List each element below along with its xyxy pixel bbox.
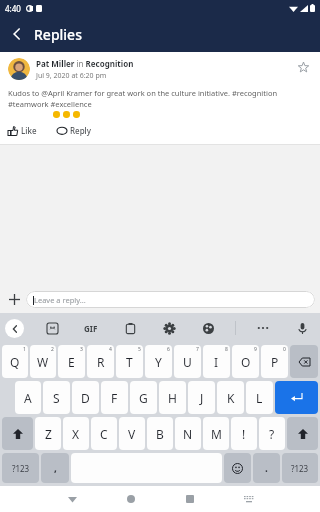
button[interactable]: Symbols (2, 453, 39, 483)
button[interactable]: A (15, 381, 41, 414)
staticText: T (126, 354, 133, 370)
button[interactable]: C (91, 417, 117, 450)
staticText: 4:40 (5, 3, 21, 14)
staticText: E (68, 354, 75, 370)
staticText: P (271, 354, 279, 370)
staticText: Like (21, 125, 37, 136)
staticText: 7 (196, 346, 199, 353)
staticText: ?123 (12, 463, 30, 474)
button[interactable]: N (175, 417, 201, 450)
button[interactable]: Emoji (224, 453, 251, 483)
staticText: X (72, 426, 80, 442)
button[interactable]: Period (253, 453, 280, 483)
button[interactable]: More options (251, 316, 275, 340)
button[interactable]: Comma (41, 453, 69, 483)
button[interactable]: Shift (287, 417, 318, 450)
button[interactable]: Y (145, 345, 172, 378)
button[interactable]: I (203, 345, 230, 378)
staticText: 1 (23, 346, 26, 353)
button[interactable]: Symbols (282, 453, 318, 483)
button[interactable]: Back (61, 488, 83, 510)
staticText: B (156, 426, 164, 442)
staticText: Kudos to @April Kramer for great work on… (8, 88, 312, 109)
button[interactable]: H (159, 381, 186, 414)
button[interactable]: L (246, 381, 273, 414)
staticText: 9 (254, 346, 257, 353)
button[interactable]: GIF (79, 316, 103, 340)
staticText: Y (155, 354, 162, 370)
staticText: L (256, 390, 263, 406)
button[interactable]: T (116, 345, 143, 378)
staticText: Reply (70, 125, 91, 136)
staticText: ! (242, 426, 246, 442)
button[interactable]: K (217, 381, 244, 414)
staticText: G (139, 390, 148, 406)
button[interactable]: ! (231, 417, 257, 450)
staticText: Jul 9, 2020 at 6:20 pm (36, 71, 107, 81)
button[interactable]: Like (8, 123, 43, 138)
button[interactable]: Voice input (290, 316, 314, 340)
staticText: S (53, 390, 60, 406)
staticText: J (200, 390, 204, 406)
staticText: Leave a reply... (34, 295, 86, 305)
staticText: Replies (34, 25, 82, 44)
button[interactable]: D (72, 381, 99, 414)
button[interactable]: Switch keyboard (238, 488, 260, 510)
staticText: 5 (138, 346, 141, 353)
button[interactable]: Clipboard (118, 316, 142, 340)
staticText: 8 (225, 346, 228, 353)
button[interactable]: W (30, 345, 56, 378)
button[interactable]: Back (0, 17, 34, 51)
staticText: ?123 (291, 463, 309, 474)
button[interactable]: Favorite (294, 58, 312, 76)
staticText: . (265, 461, 268, 475)
staticText: , (54, 461, 57, 475)
button[interactable]: U (174, 345, 201, 378)
staticText: K (227, 390, 235, 406)
button[interactable]: P (261, 345, 288, 378)
button[interactable]: R (87, 345, 114, 378)
staticText: 4 (109, 346, 112, 353)
button[interactable]: Home (120, 488, 142, 510)
button[interactable]: V (119, 417, 145, 450)
button[interactable]: Settings (157, 316, 181, 340)
button[interactable]: Recents (179, 488, 201, 510)
button[interactable]: Leave a reply... (26, 291, 315, 308)
staticText: O (241, 354, 251, 370)
button[interactable]: Shift (2, 417, 33, 450)
button[interactable]: Enter (275, 381, 318, 414)
staticText: M (211, 426, 222, 442)
staticText: N (183, 426, 193, 442)
button[interactable]: E (58, 345, 85, 378)
button[interactable]: X (63, 417, 89, 450)
button[interactable]: S (43, 381, 70, 414)
button[interactable]: Themes (196, 316, 220, 340)
staticText: Z (45, 426, 52, 442)
staticText: ? (269, 426, 275, 442)
staticText: 6 (167, 346, 170, 353)
staticText: A (24, 390, 32, 406)
staticText: H (168, 390, 177, 406)
staticText: F (111, 390, 118, 406)
button[interactable]: Z (35, 417, 61, 450)
button[interactable]: Stickers (40, 316, 64, 340)
staticText: R (97, 354, 105, 370)
button[interactable]: J (188, 381, 215, 414)
button[interactable]: Reply (57, 123, 97, 138)
button[interactable]: ? (259, 417, 285, 450)
staticText: I (214, 354, 219, 370)
staticText: D (81, 390, 90, 406)
button[interactable]: B (147, 417, 173, 450)
button[interactable]: Q (2, 345, 28, 378)
button[interactable]: M (203, 417, 229, 450)
staticText: 0 (283, 346, 286, 353)
button[interactable]: Add attachment (5, 290, 23, 308)
staticText: 2 (51, 346, 54, 353)
button[interactable]: Backspace (290, 345, 318, 378)
button[interactable]: O (232, 345, 259, 378)
staticText: U (183, 354, 192, 370)
button[interactable]: Collapse toolbar (5, 319, 24, 338)
button[interactable]: G (130, 381, 157, 414)
button[interactable]: F (101, 381, 128, 414)
